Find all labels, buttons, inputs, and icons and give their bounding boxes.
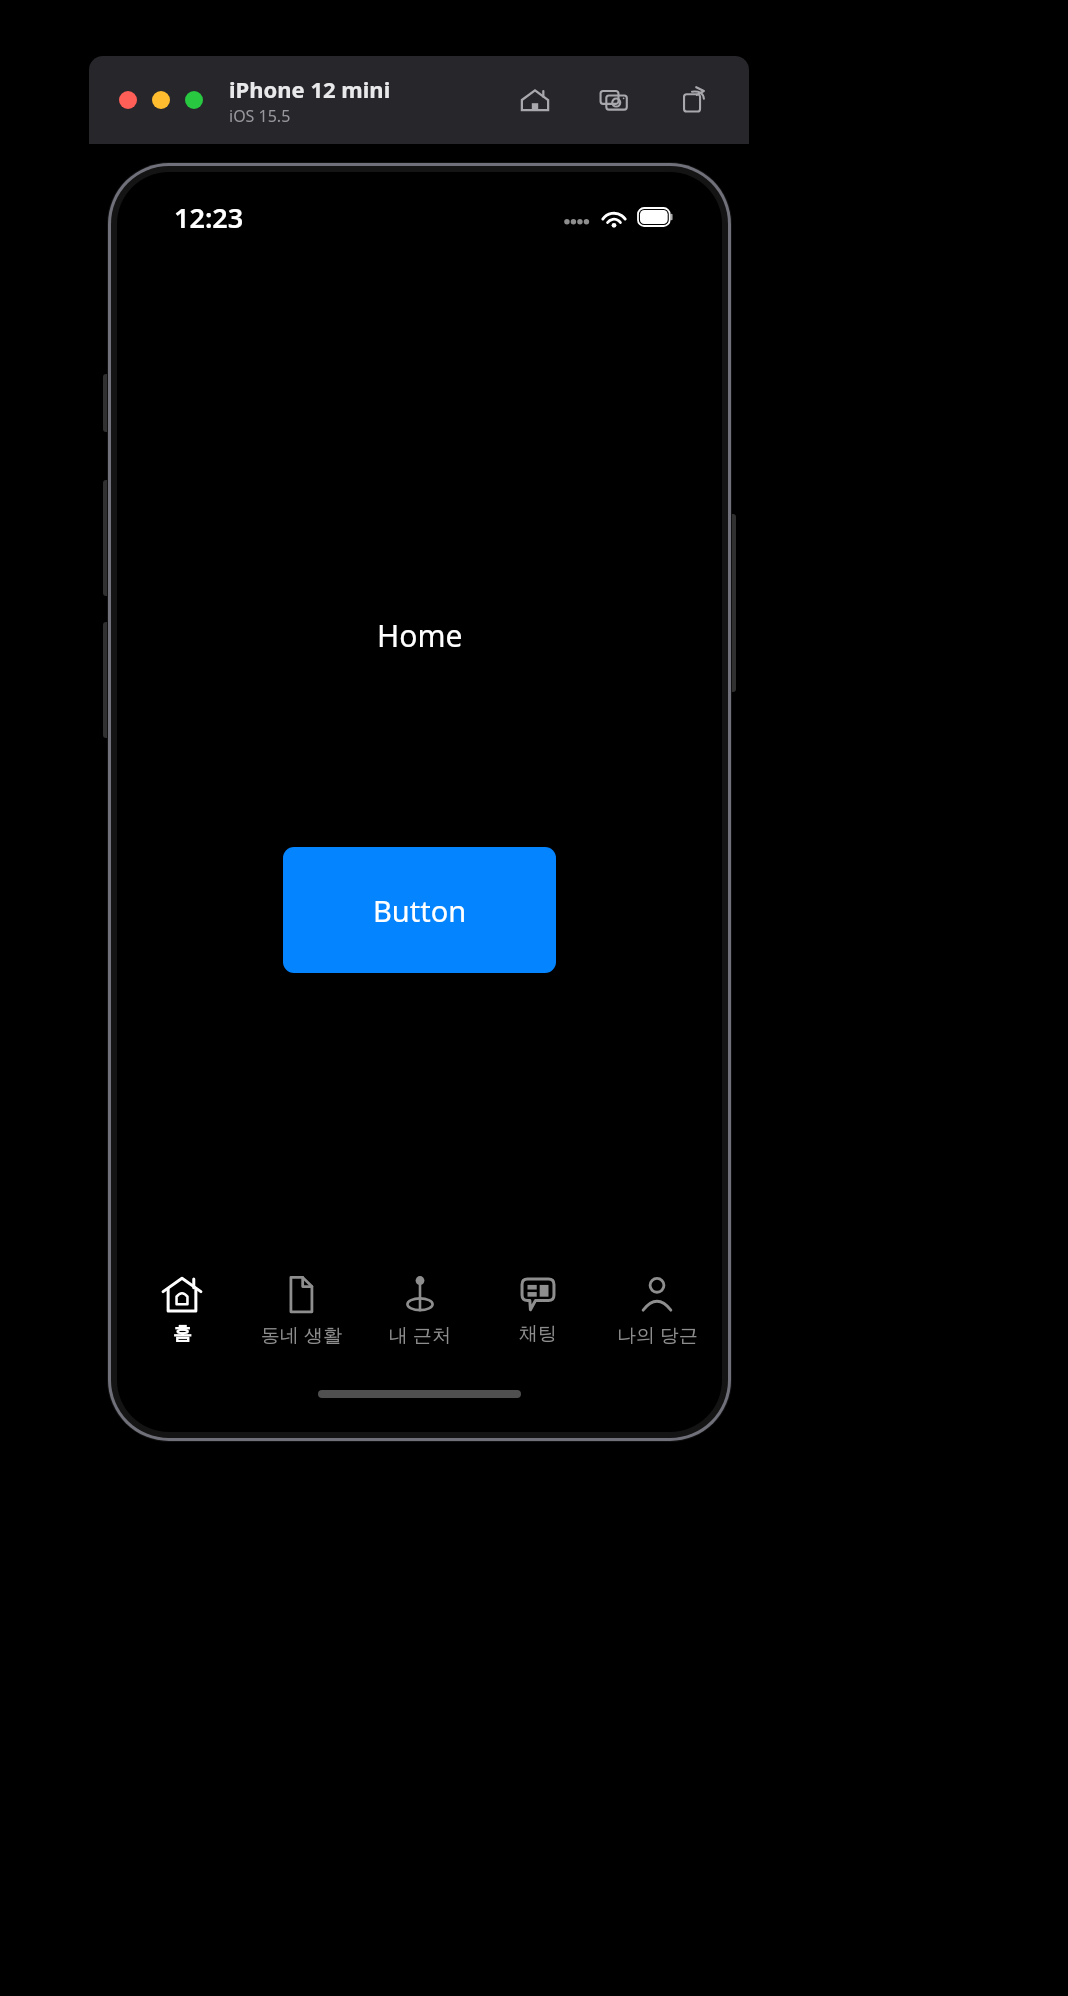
button[interactable]: 홈: [128, 1268, 236, 1376]
button[interactable]: 내 근처: [366, 1268, 474, 1376]
button[interactable]: Button: [283, 847, 556, 973]
button[interactable]: Rotate: [675, 82, 711, 118]
staticText: 동네 생활: [261, 1322, 342, 1348]
button[interactable]: Maximize: [185, 91, 203, 109]
staticText: 채팅: [519, 1322, 557, 1346]
staticText: iOS 15.5: [229, 105, 291, 127]
staticText: 나의 당근: [617, 1322, 698, 1348]
staticText: 홈: [173, 1322, 192, 1346]
staticText: 12:23: [174, 199, 244, 236]
button[interactable]: Home: [517, 82, 553, 118]
staticText: 내 근처: [389, 1322, 451, 1348]
staticText: iPhone 12 mini: [229, 74, 391, 104]
button[interactable]: Minimize: [152, 91, 170, 109]
button[interactable]: Screenshot: [596, 82, 632, 118]
button[interactable]: Close: [119, 91, 137, 109]
button[interactable]: 채팅: [484, 1268, 592, 1376]
staticText: Home: [377, 615, 463, 656]
button[interactable]: 나의 당근: [603, 1268, 711, 1376]
button[interactable]: 동네 생활: [247, 1268, 355, 1376]
staticText: Button: [373, 891, 467, 930]
